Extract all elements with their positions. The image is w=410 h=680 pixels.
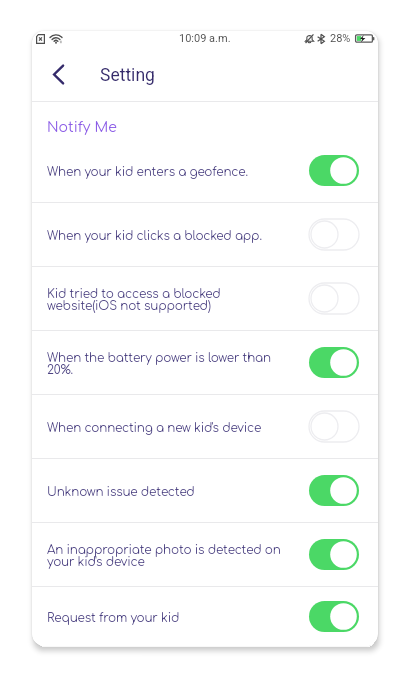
staticText: When your kid enters a geofence. bbox=[47, 165, 287, 178]
button[interactable]: Enabled bbox=[309, 155, 359, 186]
button[interactable]: Enabled bbox=[309, 475, 359, 506]
button[interactable]: Request from your kid bbox=[32, 587, 378, 646]
staticText: 28% bbox=[330, 32, 351, 45]
button[interactable]: Disabled bbox=[309, 283, 359, 314]
button[interactable]: Kid tried to access a blocked website(iO… bbox=[32, 267, 378, 330]
button[interactable]: Unknown issue detected bbox=[32, 459, 378, 522]
staticText: Setting bbox=[100, 65, 155, 86]
button[interactable]: Enabled bbox=[309, 539, 359, 570]
button[interactable]: An inappropriate photo is detected on yo… bbox=[32, 523, 378, 586]
staticText: When connecting a new kid's device bbox=[47, 421, 287, 434]
button[interactable]: When the battery power is lower than 20%… bbox=[32, 331, 378, 394]
button[interactable]: Disabled bbox=[309, 411, 359, 442]
button[interactable]: Back bbox=[38, 54, 78, 94]
button[interactable]: Disabled bbox=[309, 219, 359, 250]
button[interactable]: When your kid enters a geofence. bbox=[32, 139, 378, 202]
staticText: When your kid clicks a blocked app. bbox=[47, 229, 287, 242]
staticText: An inappropriate photo is detected on yo… bbox=[47, 543, 287, 569]
button[interactable]: When your kid clicks a blocked app. bbox=[32, 203, 378, 266]
button[interactable]: Enabled bbox=[309, 347, 359, 378]
button[interactable]: When connecting a new kid's device bbox=[32, 395, 378, 458]
button[interactable]: Enabled bbox=[309, 601, 359, 632]
staticText: Request from your kid bbox=[47, 611, 287, 624]
staticText: 10:09 a.m. bbox=[179, 32, 231, 45]
staticText: Notify Me bbox=[47, 120, 117, 136]
staticText: When the battery power is lower than 20%… bbox=[47, 351, 287, 377]
staticText: Unknown issue detected bbox=[47, 485, 287, 498]
staticText: Kid tried to access a blocked website(iO… bbox=[47, 287, 287, 313]
